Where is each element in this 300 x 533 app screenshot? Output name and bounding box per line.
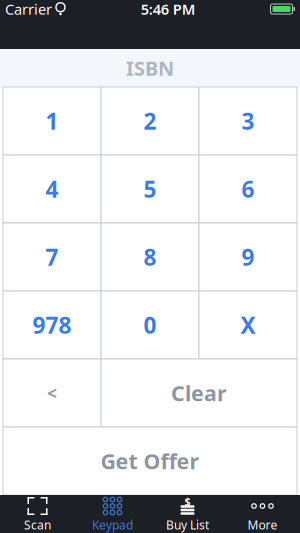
staticText: 9 bbox=[241, 242, 254, 272]
button[interactable]: 978 bbox=[3, 291, 101, 359]
button[interactable]: 3 bbox=[199, 87, 297, 155]
button[interactable]: Scan bbox=[0, 495, 75, 533]
staticText: 8 bbox=[143, 242, 156, 272]
staticText bbox=[52, 1, 55, 17]
staticText: 3 bbox=[241, 106, 254, 136]
staticText: < bbox=[47, 381, 57, 404]
staticText: $ bbox=[184, 494, 190, 508]
staticText: 6 bbox=[241, 174, 254, 204]
button[interactable]: 6 bbox=[199, 155, 297, 223]
staticText: More bbox=[247, 517, 277, 533]
staticText: 0 bbox=[143, 310, 156, 340]
button[interactable]: 5 bbox=[101, 155, 199, 223]
button[interactable]: Keypad bbox=[75, 495, 150, 533]
staticText: 978 bbox=[32, 310, 71, 340]
button[interactable]: 0 bbox=[101, 291, 199, 359]
button[interactable]: 8 bbox=[101, 223, 199, 291]
button[interactable]: X bbox=[199, 291, 297, 359]
staticText: Buy List bbox=[166, 517, 209, 533]
staticText: 5 bbox=[143, 174, 156, 204]
staticText: 1 bbox=[45, 106, 58, 136]
staticText: Scan bbox=[24, 517, 51, 533]
staticText: 7 bbox=[45, 242, 58, 272]
button[interactable]: More bbox=[225, 495, 300, 533]
button[interactable]: 4 bbox=[3, 155, 101, 223]
staticText: 2 bbox=[143, 106, 156, 136]
button[interactable]: Get Offer bbox=[3, 427, 297, 495]
staticText: Keypad bbox=[92, 517, 133, 533]
staticText: X bbox=[240, 310, 255, 340]
button[interactable]: 1 bbox=[3, 87, 101, 155]
staticText: Clear bbox=[171, 379, 227, 407]
staticText: Get Offer bbox=[100, 447, 199, 475]
button[interactable]: 7 bbox=[3, 223, 101, 291]
staticText: 4 bbox=[45, 174, 58, 204]
button[interactable]: 9 bbox=[199, 223, 297, 291]
button[interactable]: $ bbox=[150, 495, 225, 533]
staticText: ISBN bbox=[126, 55, 174, 81]
button[interactable]: < bbox=[3, 359, 101, 427]
staticText: Carrier bbox=[5, 0, 52, 19]
button[interactable]: 2 bbox=[101, 87, 199, 155]
button[interactable]: Clear bbox=[101, 359, 297, 427]
staticText: 5:46 PM bbox=[141, 0, 196, 19]
